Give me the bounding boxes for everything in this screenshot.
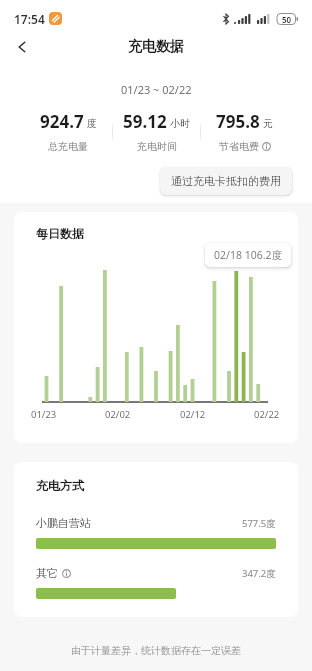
staticText: 59.12 <box>123 110 167 133</box>
staticText: 347.2度 <box>242 567 276 580</box>
staticText: 02/02 <box>105 408 131 421</box>
staticText: 由于计量差异，统计数据存在一定误差 <box>71 644 241 657</box>
button[interactable] <box>8 33 36 61</box>
staticText: 其它 <box>36 566 58 580</box>
staticText: 924.7 <box>40 110 84 133</box>
staticText: 小鹏自营站 <box>36 516 91 530</box>
staticText: 通过充电卡抵扣的费用 <box>171 174 281 188</box>
staticText: 每日数据 <box>36 226 84 241</box>
staticText: 795.8 <box>216 110 260 133</box>
staticText: 02/22 <box>254 408 280 421</box>
staticText: 总充电量 <box>48 140 88 153</box>
staticText: 度 <box>87 117 97 130</box>
staticText: 577.5度 <box>242 517 276 530</box>
staticText: 充电数据 <box>128 38 184 56</box>
staticText: 小时 <box>170 117 190 130</box>
staticText: 充电时间 <box>137 140 177 153</box>
staticText: 17:54 <box>14 11 45 27</box>
staticText: 元 <box>263 117 273 130</box>
button[interactable] <box>262 142 271 151</box>
staticText: 02/18 106.2度 <box>214 248 282 262</box>
staticText: 节省电费 <box>219 140 259 153</box>
staticText: 01/23 ~ 02/22 <box>121 82 192 97</box>
staticText: 充电方式 <box>36 478 84 493</box>
staticText: 01/23 <box>31 408 57 421</box>
staticText: 02/12 <box>180 408 206 421</box>
button[interactable] <box>62 569 71 578</box>
staticText: 50 <box>282 14 292 25</box>
